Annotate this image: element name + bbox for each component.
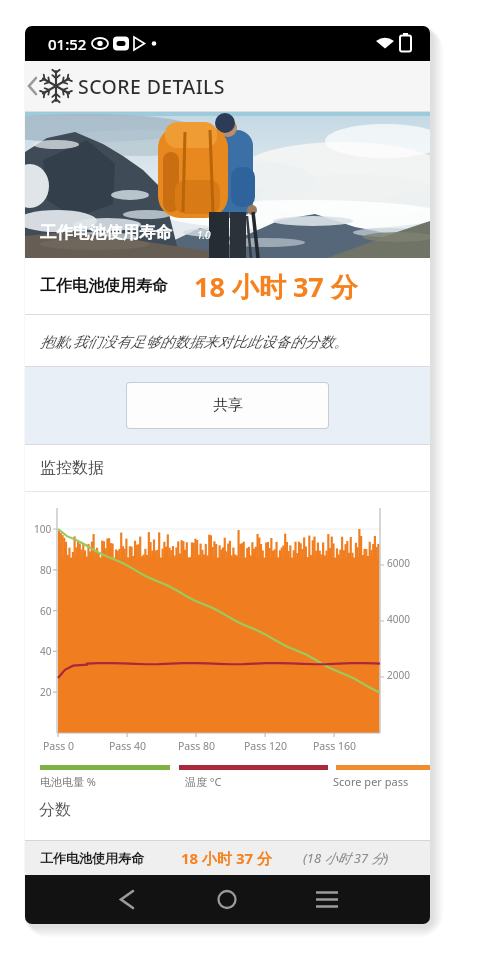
button[interactable]: 工作电池使用寿命 — [25, 841, 430, 875]
button[interactable] — [160, 875, 295, 924]
staticText: 监控数据 — [40, 458, 104, 478]
staticText: Pass 80 — [178, 739, 216, 753]
staticText: 4000 — [387, 612, 410, 626]
staticText: 温度 °C — [185, 774, 222, 789]
staticText: 抱歉,我们没有足够的数据来对比此设备的分数。 — [40, 331, 349, 351]
staticText: Score per pass — [333, 774, 409, 789]
staticText: (18 小时 37 分) — [303, 849, 389, 867]
staticText: 1.0 — [197, 228, 211, 242]
staticText: 80 — [40, 563, 52, 577]
staticText: 工作电池使用寿命 — [40, 276, 168, 296]
button[interactable] — [25, 875, 160, 924]
staticText: 60 — [40, 604, 52, 618]
staticText: 电池电量 % — [40, 774, 97, 789]
staticText: Pass 160 — [313, 739, 357, 753]
staticText: 40 — [40, 644, 52, 658]
staticText: 01:52 — [48, 34, 87, 54]
staticText: 2000 — [387, 668, 410, 682]
button[interactable]: SCORE DETAILS — [25, 61, 430, 111]
staticText: SCORE DETAILS — [78, 73, 225, 100]
staticText: 分数 — [39, 800, 71, 820]
staticText: 6000 — [387, 556, 410, 570]
staticText: Pass 40 — [109, 739, 147, 753]
staticText: 共享 — [213, 396, 243, 415]
staticText: Pass 0 — [43, 739, 75, 753]
button[interactable] — [295, 875, 430, 924]
staticText: 工作电池使用寿命 — [40, 222, 172, 243]
staticText: Pass 120 — [244, 739, 288, 753]
button[interactable]: 共享 — [127, 383, 328, 428]
staticText: 18 小时 37 分 — [181, 848, 273, 868]
staticText: 工作电池使用寿命 — [40, 850, 144, 866]
staticText: 100 — [34, 522, 52, 536]
staticText: 20 — [40, 685, 52, 699]
staticText: 18 小时 37 分 — [194, 268, 358, 305]
